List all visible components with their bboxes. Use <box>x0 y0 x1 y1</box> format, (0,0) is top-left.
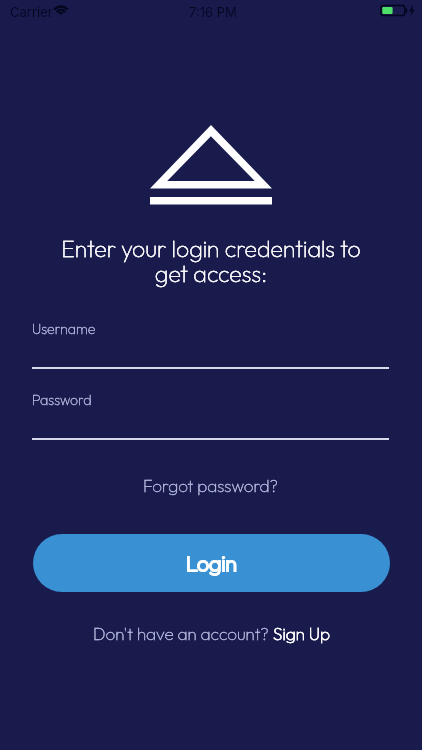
staticText: Forgot password? <box>143 475 279 496</box>
staticText: Don't have an account? <box>93 623 273 644</box>
staticText: Password <box>32 391 92 409</box>
other: Battery charging <box>380 5 416 16</box>
staticText: Don't have an account? <box>93 623 273 644</box>
staticText: Enter your login credentials to get acce… <box>51 234 371 288</box>
staticText: Carrier <box>10 4 53 20</box>
staticText: Forgot password? <box>143 475 279 496</box>
button[interactable]: Sign Up <box>273 623 330 644</box>
staticText: Sign Up <box>273 623 330 644</box>
staticText: Login <box>186 550 237 576</box>
button[interactable]: Password <box>32 391 389 440</box>
button[interactable]: Login <box>33 534 390 592</box>
staticText: Username <box>32 320 96 338</box>
staticText: Enter your login credentials to get acce… <box>51 234 371 288</box>
staticText: Login <box>186 550 237 576</box>
staticText: Password <box>32 391 92 409</box>
other: App logo <box>150 125 272 204</box>
button[interactable]: Forgot password? <box>135 471 287 500</box>
staticText: 7:16 PM <box>189 4 237 20</box>
other: Wi-Fi signal <box>54 5 68 16</box>
button[interactable]: Username <box>32 320 389 369</box>
staticText: Sign Up <box>273 623 330 644</box>
staticText: Username <box>32 320 96 338</box>
